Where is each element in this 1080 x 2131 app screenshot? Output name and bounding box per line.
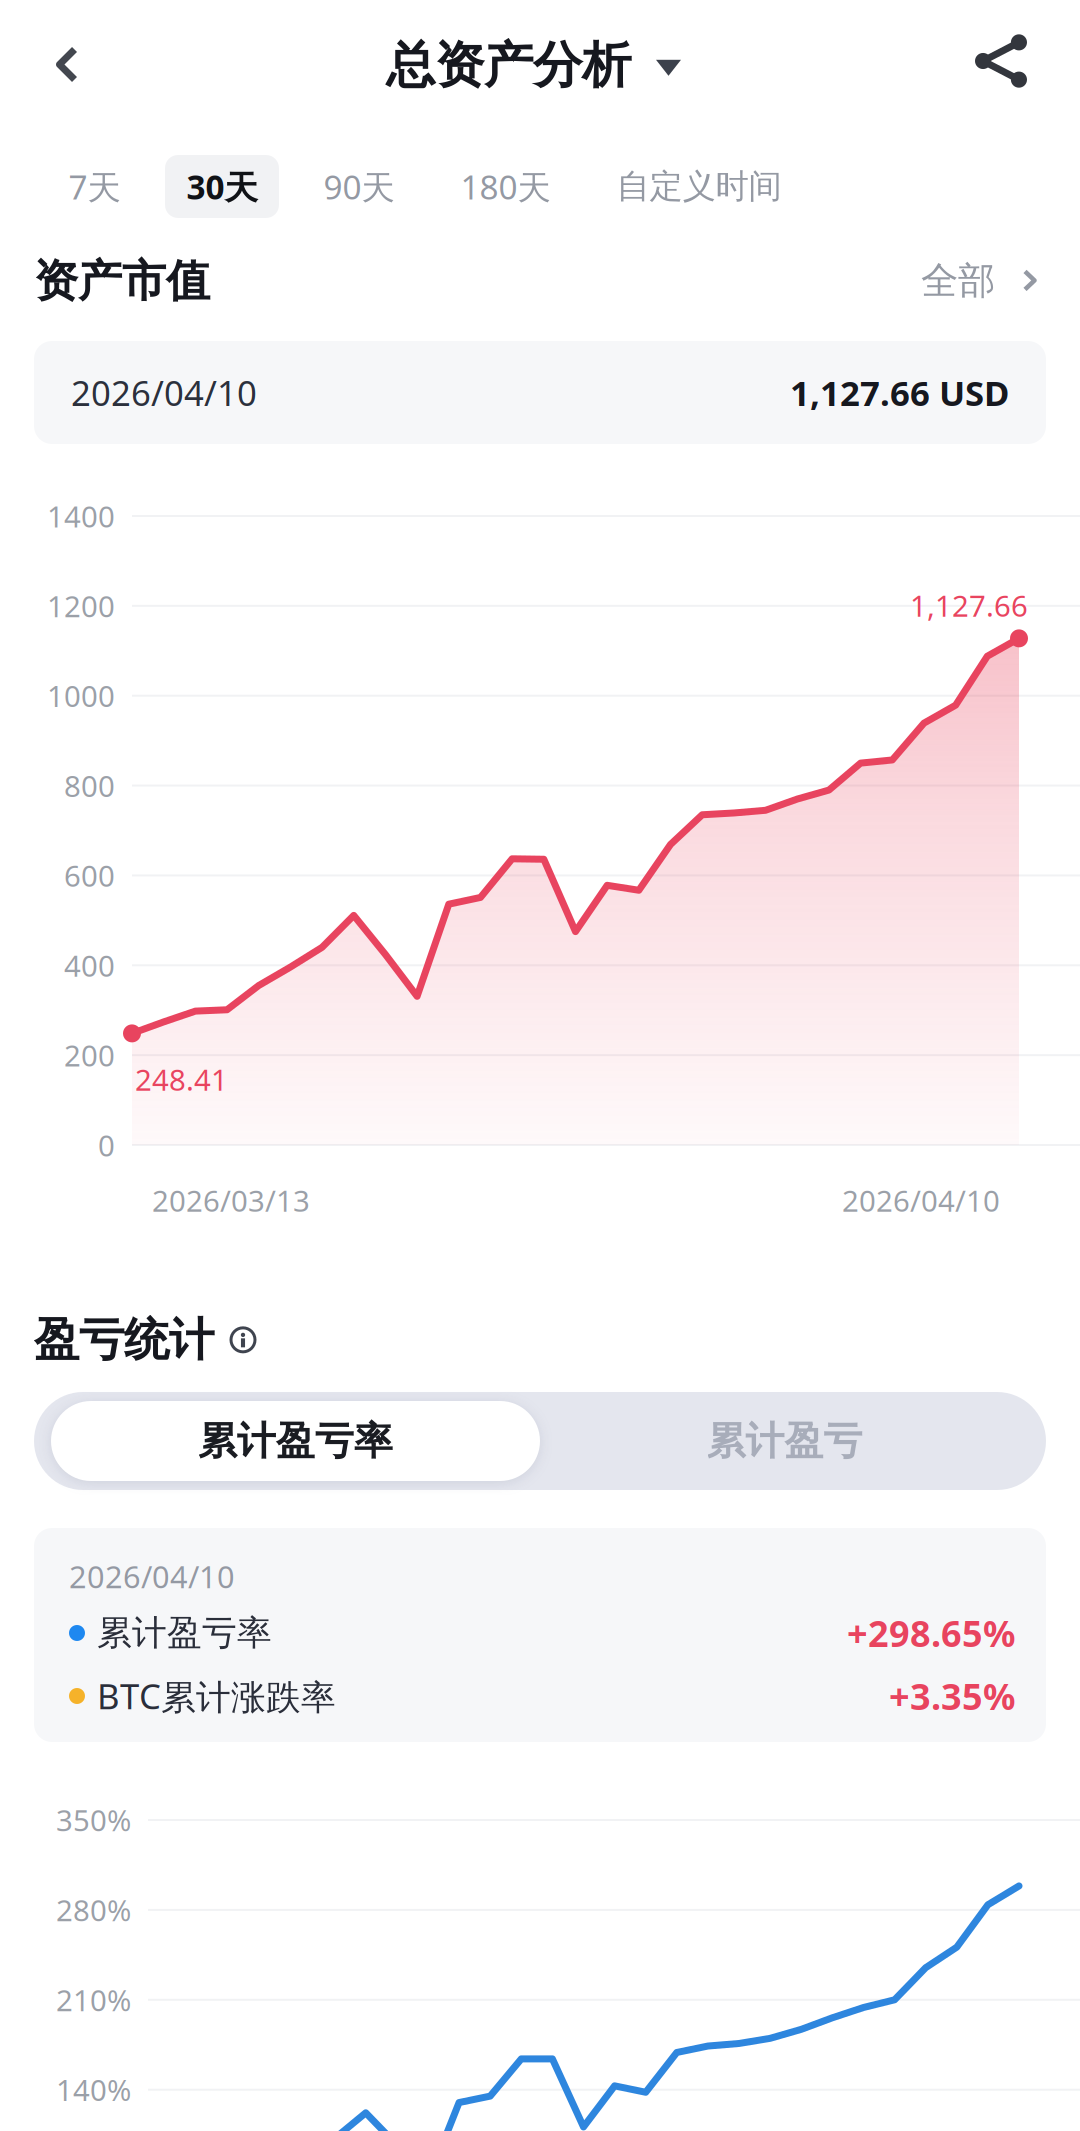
staticText: 2026/04/10 [69, 1556, 235, 1597]
button[interactable]: 返回 [27, 19, 106, 109]
staticText: 30天 [186, 164, 257, 209]
staticText: 210% [56, 1980, 131, 2019]
staticText: 350% [56, 1800, 131, 1839]
button[interactable]: 累计盈亏率 [51, 1401, 540, 1481]
button[interactable]: 7天 [47, 155, 142, 218]
staticText: 400 [64, 946, 115, 985]
button[interactable]: 180天 [439, 155, 572, 218]
staticText: 180天 [460, 164, 550, 209]
staticText: 800 [64, 766, 115, 805]
staticText: 累计盈亏率 [198, 1417, 393, 1465]
staticText: 140% [56, 2070, 131, 2109]
button[interactable]: 说明 [226, 1323, 260, 1357]
staticText: 2026/04/10 [71, 369, 257, 415]
staticText: 200 [64, 1036, 115, 1075]
staticText: 全部 [921, 258, 995, 304]
staticText: +3.35% [889, 1672, 1015, 1720]
staticText: 1200 [47, 586, 115, 625]
staticText: 2026/03/13 [152, 1181, 310, 1220]
staticText: 248.41 [135, 1060, 228, 1099]
staticText: +298.65% [847, 1609, 1015, 1657]
staticText: 1400 [47, 496, 115, 535]
staticText: 600 [64, 856, 115, 895]
staticText: 280% [56, 1890, 131, 1929]
staticText: 自定义时间 [616, 166, 781, 207]
staticText: 1,127.66 [910, 586, 1028, 625]
staticText: 7天 [68, 164, 120, 209]
staticText: 2026/04/10 [842, 1181, 1000, 1220]
button[interactable]: 全部 [911, 244, 1044, 318]
staticText: 资产市值 [34, 254, 210, 308]
button[interactable]: 累计盈亏 [540, 1401, 1029, 1481]
staticText: 累计盈亏率 [97, 1612, 272, 1654]
staticText: 90天 [323, 164, 394, 209]
staticText: 盈亏统计 [34, 1312, 214, 1368]
staticText: 1000 [47, 676, 115, 715]
button[interactable]: 30天 [165, 155, 279, 218]
staticText: BTC累计涨跌率 [97, 1673, 336, 1719]
staticText: 总资产分析 [386, 35, 631, 96]
button[interactable]: 总资产分析 [374, 21, 693, 110]
staticText: 累计盈亏 [706, 1417, 862, 1465]
button[interactable]: 分享 [949, 8, 1053, 114]
button[interactable]: 90天 [302, 155, 416, 218]
button[interactable]: 自定义时间 [595, 155, 803, 218]
staticText: 0 [98, 1125, 115, 1164]
staticText: 1,127.66 USD [790, 369, 1009, 415]
